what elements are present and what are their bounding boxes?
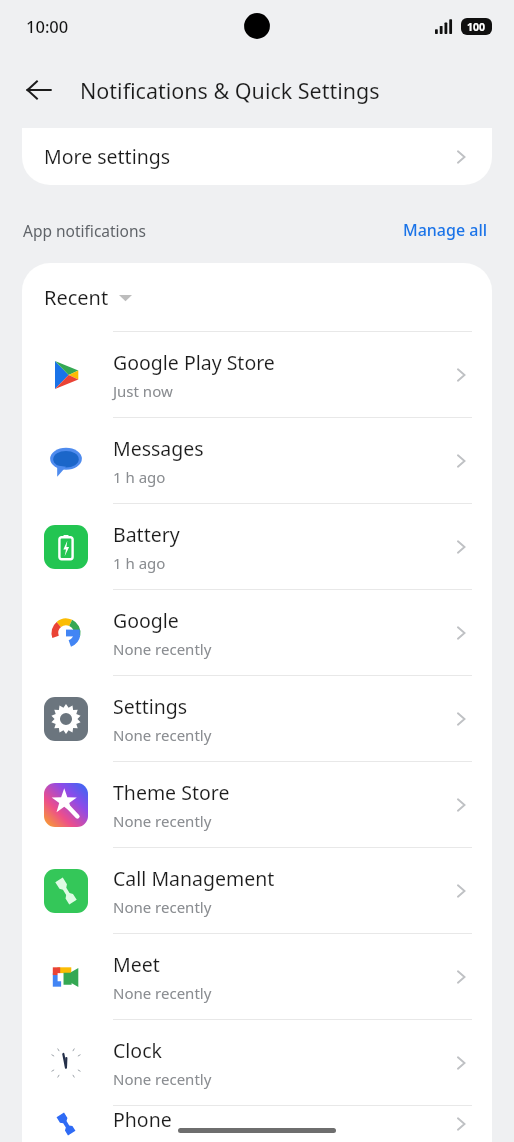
staticText: None recently bbox=[113, 1069, 212, 1089]
staticText: Meet bbox=[113, 951, 160, 978]
staticText: 100 bbox=[467, 20, 486, 34]
staticText: Google bbox=[113, 607, 179, 634]
staticText: Phone bbox=[113, 1106, 172, 1133]
staticText: None recently bbox=[113, 897, 212, 917]
button[interactable]: More settings bbox=[22, 128, 492, 185]
staticText: App notifications bbox=[23, 220, 399, 241]
button[interactable]: Meet bbox=[22, 934, 492, 1019]
staticText: None recently bbox=[113, 639, 212, 659]
staticText: Call Management bbox=[113, 865, 275, 892]
staticText: None recently bbox=[113, 725, 212, 745]
button[interactable]: Google bbox=[22, 590, 492, 675]
staticText: More settings bbox=[44, 143, 450, 170]
button[interactable]: Phone bbox=[22, 1106, 492, 1142]
staticText: 1 h ago bbox=[113, 467, 166, 487]
staticText: None recently bbox=[113, 983, 212, 1003]
button[interactable]: Call Management bbox=[22, 848, 492, 933]
staticText: Settings bbox=[113, 693, 188, 720]
staticText: None recently bbox=[113, 811, 212, 831]
staticText: Messages bbox=[113, 435, 204, 462]
staticText: Battery bbox=[113, 521, 180, 548]
staticText: Just now bbox=[113, 381, 173, 401]
staticText: Theme Store bbox=[113, 779, 230, 806]
button[interactable]: Settings bbox=[22, 676, 492, 761]
staticText: Google Play Store bbox=[113, 349, 275, 376]
button[interactable]: Recent bbox=[22, 263, 492, 331]
button[interactable]: Battery bbox=[22, 504, 492, 589]
button[interactable]: Theme Store bbox=[22, 762, 492, 847]
staticText: 1 h ago bbox=[113, 553, 166, 573]
staticText: 10:00 bbox=[26, 15, 69, 37]
staticText: Notifications & Quick Settings bbox=[80, 76, 380, 105]
staticText: Recent bbox=[44, 284, 109, 311]
button[interactable]: Messages bbox=[22, 418, 492, 503]
staticText: Manage all bbox=[403, 219, 488, 241]
button[interactable]: Google Play Store bbox=[22, 332, 492, 417]
button[interactable]: Manage all bbox=[399, 215, 492, 245]
button[interactable]: Clock bbox=[22, 1020, 492, 1105]
staticText: Clock bbox=[113, 1037, 162, 1064]
button[interactable]: Back bbox=[16, 67, 62, 113]
